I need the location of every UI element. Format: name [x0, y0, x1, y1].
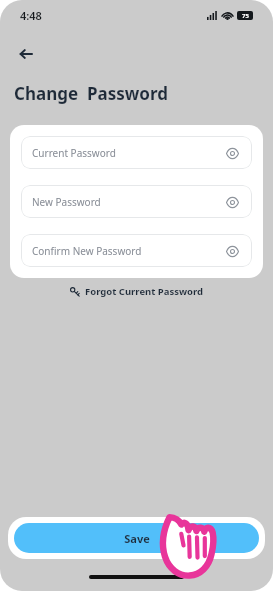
button[interactable]: Back [10, 38, 42, 70]
button[interactable]: New Password [21, 185, 252, 218]
button[interactable]: Show password [223, 144, 241, 162]
button[interactable]: Save [14, 523, 259, 553]
button[interactable]: Forgot Current Password [66, 283, 208, 300]
staticText: Change Password [14, 82, 168, 105]
button[interactable]: Confirm New Password [21, 234, 252, 267]
staticText: 4:48 [20, 8, 42, 23]
button[interactable]: Current Password [21, 136, 252, 169]
staticText: Forgot Current Password [85, 285, 204, 298]
button[interactable]: Show password [223, 242, 241, 260]
staticText: Save [124, 531, 150, 546]
staticText: Current Password [32, 146, 223, 160]
staticText: New Password [32, 195, 223, 209]
staticText: 75 [242, 12, 249, 20]
button[interactable]: Show password [223, 193, 241, 211]
staticText: Confirm New Password [32, 244, 223, 258]
